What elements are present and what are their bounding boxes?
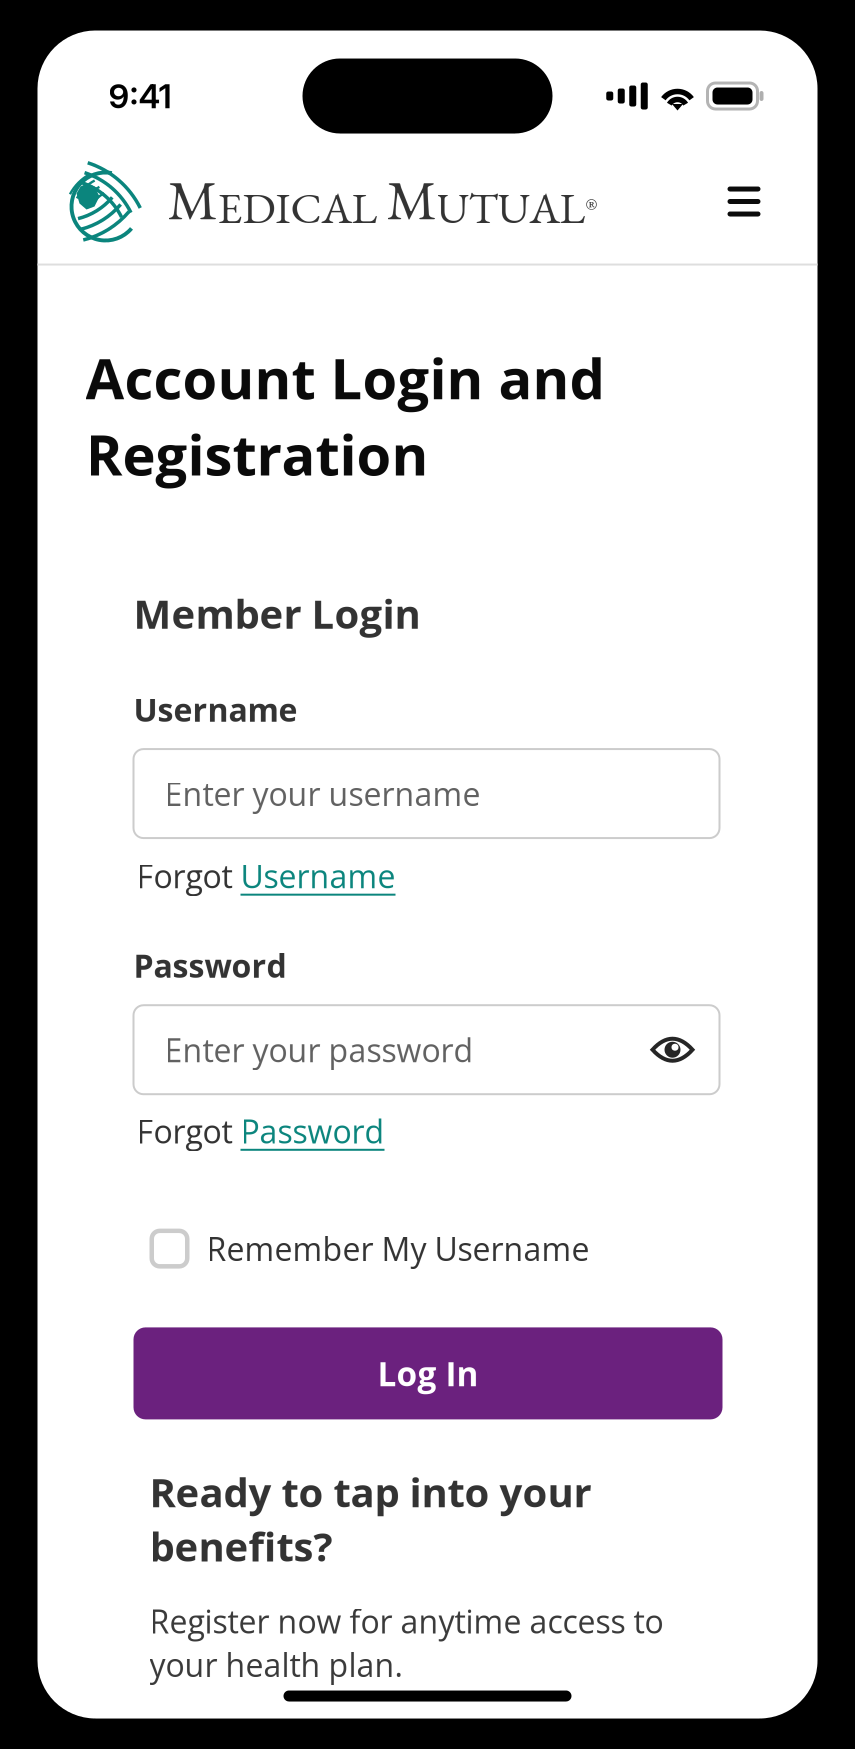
button[interactable]: Password (240, 1109, 384, 1153)
button[interactable]: Menu (713, 172, 774, 230)
staticText: Forgot (136, 1109, 240, 1153)
staticText: Password (240, 1109, 384, 1153)
staticText: Enter your username (164, 772, 480, 815)
staticText: Log In (377, 1351, 478, 1396)
staticText: Remember My Username (206, 1227, 589, 1270)
staticText: 9:41 (108, 76, 171, 116)
staticText: Ready to tap into your benefits? (149, 1464, 591, 1573)
staticText: UTUAL (436, 179, 585, 236)
button[interactable]: Remember My Username (37, 1227, 589, 1270)
staticText: Account Login and Registration (85, 339, 604, 492)
staticText: EDICAL (217, 179, 386, 236)
staticText: Register now for anytime access to your … (149, 1599, 663, 1686)
button[interactable]: Show password (650, 1034, 694, 1066)
button[interactable]: Log In (133, 1327, 722, 1419)
staticText: Member Login (133, 586, 420, 640)
staticText: ® (585, 192, 597, 215)
staticText: Forgot (136, 854, 240, 898)
staticText: M (386, 163, 436, 236)
staticText: Username (133, 687, 297, 731)
staticText: Username (240, 854, 395, 898)
staticText: M (167, 163, 217, 236)
staticText: Enter your password (164, 1028, 473, 1071)
button[interactable]: Username (240, 854, 395, 898)
staticText: Password (133, 944, 286, 987)
